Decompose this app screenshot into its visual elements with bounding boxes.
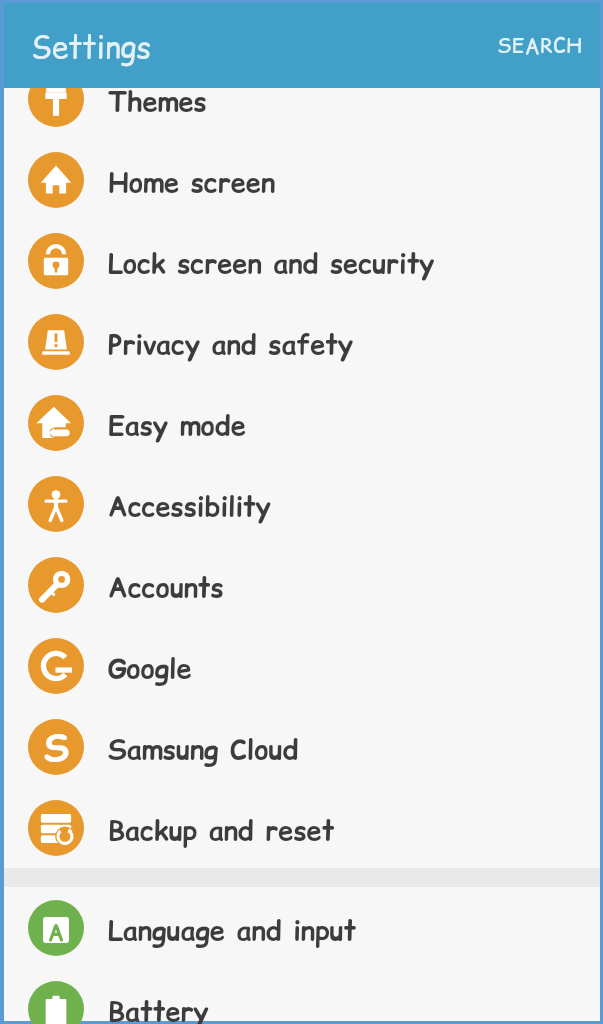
staticText: SEARCH [497, 31, 583, 60]
button[interactable]: Accessibility [4, 463, 600, 544]
button[interactable]: Themes [4, 58, 600, 139]
staticText: Themes [108, 83, 207, 121]
staticText: Easy mode [108, 407, 246, 445]
button[interactable]: Lock screen and security [4, 220, 600, 301]
staticText: Battery [108, 993, 209, 1024]
staticText: Privacy and safety [108, 326, 353, 364]
staticText: Samsung Cloud [108, 731, 299, 769]
staticText: Accounts [108, 569, 224, 607]
staticText: A [48, 918, 65, 943]
staticText: Home screen [108, 164, 276, 202]
staticText: Lock screen and security [108, 245, 435, 283]
staticText: Accessibility [108, 488, 271, 526]
staticText: Language and input [108, 912, 357, 950]
button[interactable]: Backup and reset [4, 787, 600, 868]
button[interactable]: Home screen [4, 139, 600, 220]
button[interactable]: Easy mode [4, 382, 600, 463]
staticText: S [44, 723, 69, 773]
button[interactable]: A [4, 887, 600, 968]
button[interactable]: SEARCH [475, 15, 600, 76]
button[interactable]: Battery [4, 968, 600, 1024]
button[interactable]: Privacy and safety [4, 301, 600, 382]
button[interactable]: S [4, 706, 600, 787]
staticText: Google [108, 650, 192, 688]
button[interactable]: Accounts [4, 544, 600, 625]
button[interactable]: Google [4, 625, 600, 706]
staticText: Settings [31, 26, 152, 68]
staticText: Backup and reset [108, 812, 335, 850]
